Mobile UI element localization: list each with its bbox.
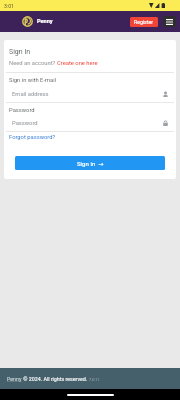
button[interactable]: Sign in → — [15, 156, 165, 170]
staticText: Sign in with E-mail — [9, 77, 57, 84]
button[interactable]: Password — [4, 120, 176, 127]
staticText: Penny — [37, 18, 53, 25]
button[interactable]: Register — [130, 17, 158, 27]
button[interactable]: Create one here — [57, 60, 98, 67]
staticText: 3:01 — [4, 3, 15, 9]
staticText: Sign in → — [77, 160, 104, 167]
staticText: © 2024. All rights reserved. — [22, 376, 89, 382]
button[interactable]: Email address — [4, 91, 176, 98]
button[interactable]: Penny — [7, 376, 22, 382]
staticText: 7.0.11 — [89, 377, 100, 381]
staticText: Register — [134, 19, 154, 25]
staticText: Need an account? — [9, 60, 57, 67]
staticText: Password — [9, 107, 35, 114]
button[interactable]: Open menu — [163, 16, 176, 27]
staticText: Sign In — [9, 48, 31, 56]
staticText: Email address — [12, 91, 49, 98]
button[interactable]: Forgot password? — [9, 134, 56, 141]
staticText: Password — [12, 120, 38, 127]
